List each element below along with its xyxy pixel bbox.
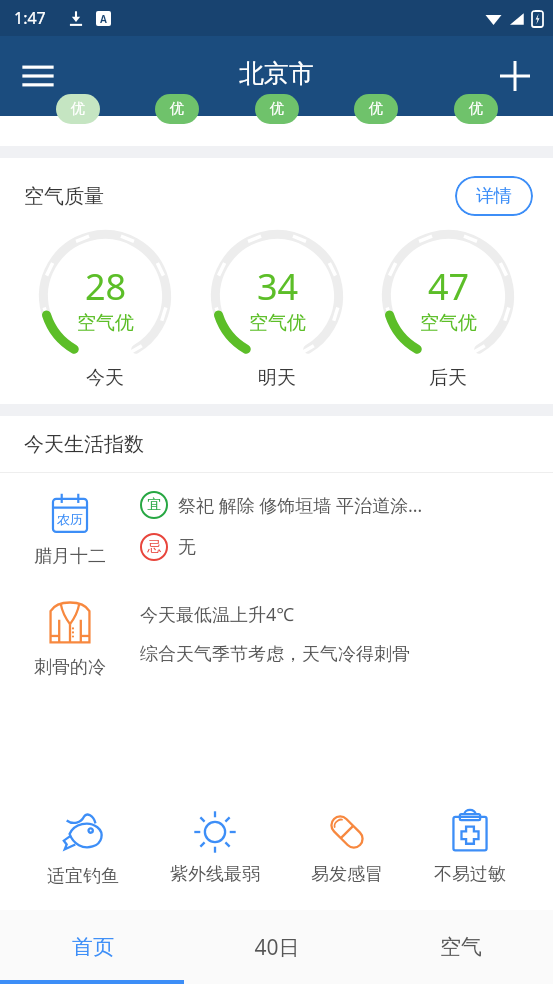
staticText: 宜 — [147, 496, 161, 514]
button[interactable]: 详情 — [455, 176, 533, 216]
button[interactable]: 农历 — [0, 491, 553, 568]
staticText: 空气优 — [420, 311, 477, 335]
staticText: 祭祀 解除 修饰垣墙 平治道涂… — [178, 493, 423, 518]
button[interactable]: 空气 — [369, 910, 553, 984]
staticText: A — [100, 12, 107, 26]
staticText: 1:47 — [14, 7, 46, 29]
staticText: 40日 — [254, 933, 300, 962]
staticText: 今天 — [86, 366, 124, 390]
button[interactable]: 首页 — [0, 910, 185, 984]
button[interactable]: Menu — [12, 50, 64, 102]
button[interactable]: 不易过敏 — [430, 809, 510, 886]
staticText: 今天最低温上升4℃ — [140, 602, 295, 627]
staticText: 明天 — [258, 366, 296, 390]
staticText: 优 — [369, 100, 383, 118]
staticText: 刺骨的冷 — [34, 656, 106, 679]
staticText: 今天生活指数 — [24, 432, 144, 457]
staticText: 易发感冒 — [311, 863, 383, 886]
staticText: 详情 — [476, 185, 512, 208]
button[interactable]: 40日 — [185, 910, 369, 984]
button[interactable]: 易发感冒 — [307, 809, 387, 886]
staticText: 腊月十二 — [34, 545, 106, 568]
button[interactable]: 适宜钓鱼 — [43, 809, 123, 888]
button[interactable]: 紫外线最弱 — [166, 809, 264, 886]
staticText: 优 — [270, 100, 284, 118]
staticText: 后天 — [429, 366, 467, 390]
staticText: 综合天气季节考虑，天气冷得刺骨 — [140, 643, 410, 666]
staticText: 34 — [257, 262, 299, 311]
staticText: 空气优 — [77, 311, 134, 335]
staticText: 无 — [178, 536, 196, 559]
button[interactable]: 刺骨的冷 — [0, 596, 553, 679]
staticText: 忌 — [147, 538, 161, 556]
staticText: 空气质量 — [24, 184, 104, 209]
staticText: 不易过敏 — [434, 863, 506, 886]
staticText: 首页 — [72, 934, 114, 960]
staticText: 优 — [170, 100, 184, 118]
staticText: 紫外线最弱 — [170, 863, 260, 886]
staticText: 28 — [85, 262, 127, 311]
staticText: 优 — [71, 100, 85, 118]
staticText: 空气优 — [249, 311, 306, 335]
staticText: 优 — [469, 100, 483, 118]
staticText: 北京市 — [239, 58, 314, 89]
button[interactable]: Add city — [489, 50, 541, 102]
staticText: 适宜钓鱼 — [47, 865, 119, 888]
staticText: 空气 — [440, 934, 482, 960]
staticText: 47 — [428, 262, 470, 311]
staticText: 农历 — [57, 511, 83, 527]
